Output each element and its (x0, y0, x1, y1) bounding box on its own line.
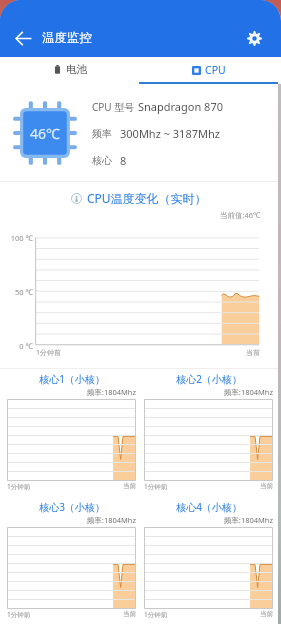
staticText: 核心2（小核） (176, 372, 242, 386)
staticText: 当前 (246, 348, 260, 357)
button[interactable]: CPU (139, 57, 278, 84)
staticText: 1分钟前 (7, 482, 31, 491)
staticText: CPU 型号 (92, 100, 135, 114)
staticText: 当前值:46℃ (220, 210, 261, 220)
staticText: CPU (205, 63, 226, 77)
staticText: 当前 (123, 482, 136, 490)
staticText: 当前 (260, 482, 273, 490)
staticText: 8 (120, 153, 127, 168)
staticText: 50 ℃ (15, 287, 33, 297)
staticText: 1分钟前 (7, 610, 31, 619)
staticText: 1分钟前 (144, 610, 168, 619)
staticText: 电池 (66, 63, 87, 76)
button[interactable]: 电池 (0, 57, 139, 84)
staticText: CPU温度变化（实时） (87, 190, 207, 206)
staticText: 频率:1804Mhz (144, 387, 273, 397)
staticText: 300Mhz ~ 3187Mhz (120, 126, 220, 141)
staticText: 核心3（小核） (39, 500, 105, 514)
button[interactable]: Back (4, 19, 42, 57)
staticText: 当前 (260, 610, 273, 618)
staticText: 1分钟前 (144, 482, 168, 491)
staticText: 温度监控 (42, 30, 92, 46)
staticText: 核心 (92, 154, 112, 167)
staticText: 频率:1804Mhz (7, 515, 136, 525)
staticText: 频率:1804Mhz (144, 515, 273, 525)
staticText: 100 ℃ (10, 233, 33, 243)
staticText: 频率 (92, 127, 112, 140)
staticText: 0 ℃ (19, 341, 33, 351)
staticText: 当前 (123, 610, 136, 618)
staticText: 46℃ (30, 124, 60, 143)
staticText: 频率:1804Mhz (7, 387, 136, 397)
staticText: Snapdragon 870 (138, 99, 223, 114)
staticText: 1分钟前 (36, 348, 62, 358)
staticText: 核心1（小核） (39, 372, 105, 386)
button[interactable]: Settings (239, 23, 269, 53)
staticText: 核心4（小核） (176, 500, 242, 514)
